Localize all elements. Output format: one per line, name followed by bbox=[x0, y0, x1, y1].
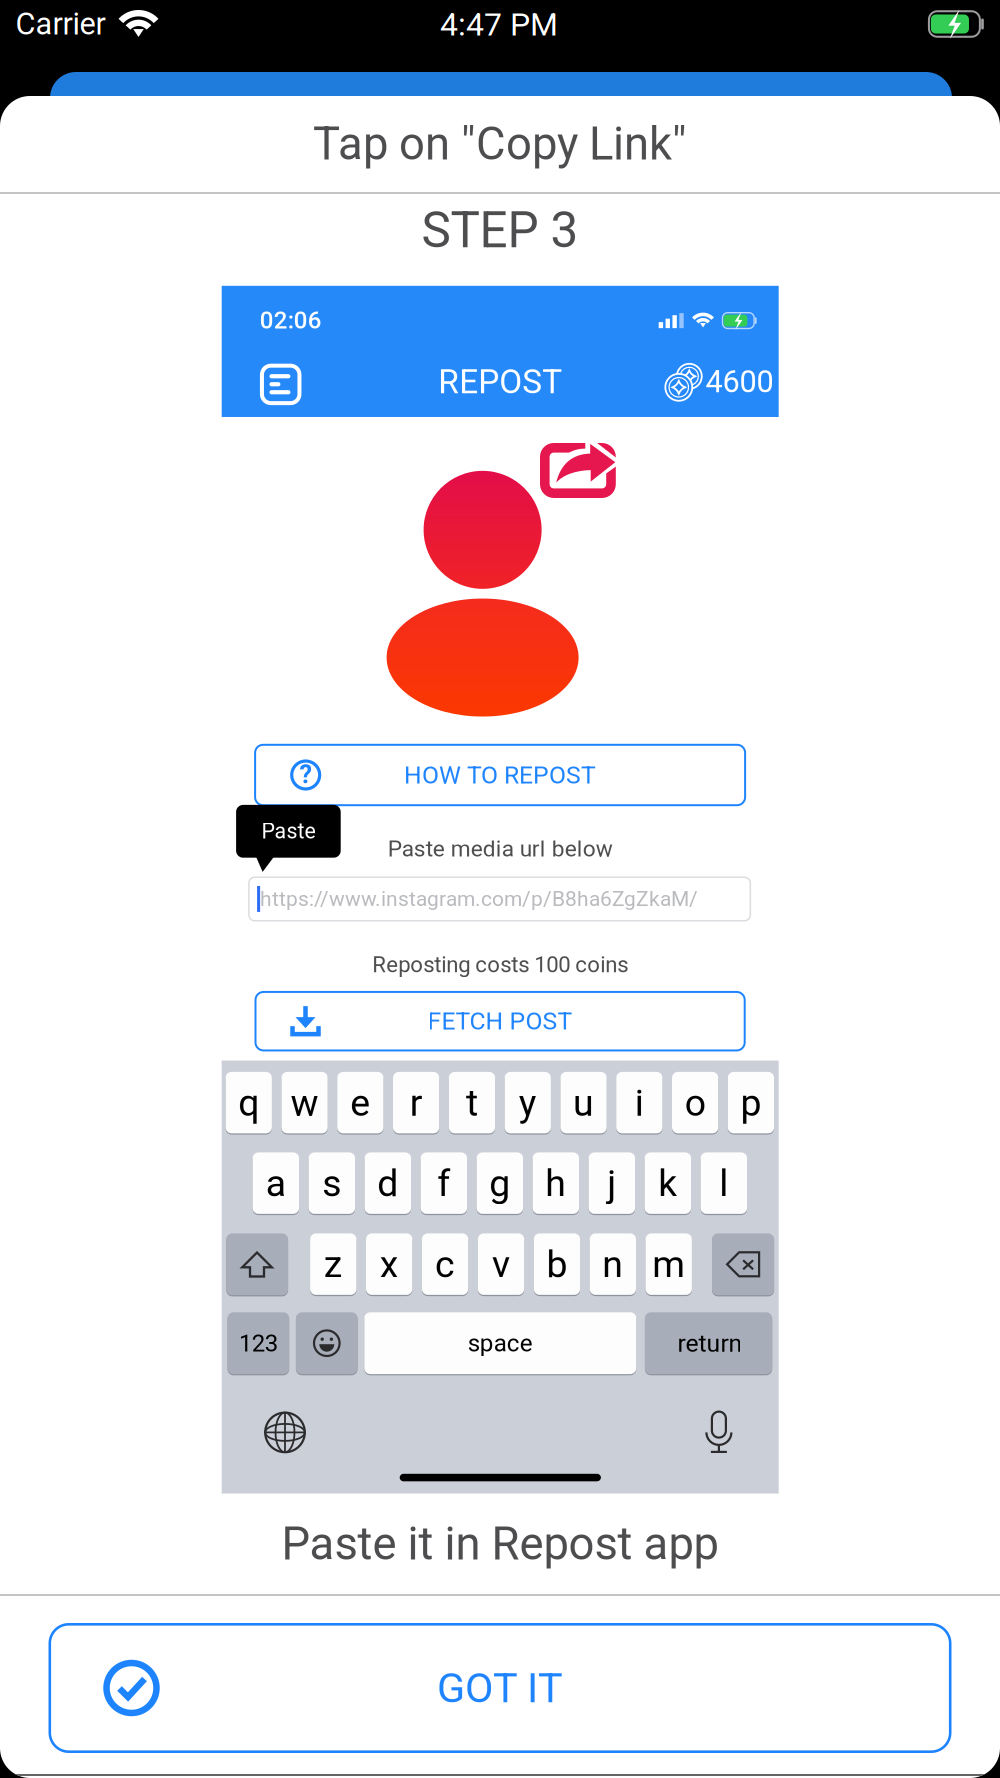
staticText: REPOST bbox=[438, 362, 562, 401]
staticText: HOW TO REPOST bbox=[404, 760, 596, 789]
staticText: space bbox=[468, 1329, 533, 1357]
staticText: y bbox=[519, 1081, 537, 1125]
staticText: 4600 bbox=[705, 364, 773, 400]
button[interactable]: ? bbox=[254, 744, 746, 806]
staticText: b bbox=[546, 1242, 567, 1286]
staticText: r bbox=[410, 1081, 423, 1125]
staticText: n bbox=[602, 1242, 623, 1286]
staticText: Reposting costs 100 coins bbox=[372, 952, 628, 978]
staticText: Carrier bbox=[15, 6, 105, 42]
staticText: z bbox=[324, 1242, 343, 1286]
button[interactable]: FETCH POST bbox=[254, 991, 746, 1051]
staticText: l bbox=[719, 1161, 728, 1205]
staticText: https://www.instagram.com/p/B8ha6ZgZkaM/ bbox=[260, 887, 698, 911]
staticText: u bbox=[573, 1081, 594, 1125]
button[interactable]: GOT IT bbox=[48, 1623, 951, 1753]
staticText: Paste bbox=[261, 819, 315, 844]
staticText: ? bbox=[299, 760, 312, 789]
staticText: 4:47 PM bbox=[440, 6, 558, 43]
staticText: h bbox=[545, 1161, 566, 1205]
staticText: j bbox=[607, 1161, 616, 1205]
staticText: g bbox=[489, 1161, 510, 1205]
staticText: e bbox=[350, 1081, 370, 1125]
staticText: s bbox=[322, 1161, 341, 1205]
staticText: STEP 3 bbox=[421, 202, 578, 259]
staticText: 123 bbox=[239, 1329, 278, 1357]
staticText: k bbox=[658, 1161, 677, 1205]
staticText: d bbox=[377, 1161, 398, 1205]
staticText: GOT IT bbox=[437, 1664, 563, 1712]
staticText: Paste media url below bbox=[388, 835, 613, 862]
staticText: q bbox=[238, 1081, 259, 1125]
staticText: Tap on "Copy Link" bbox=[313, 117, 687, 170]
staticText: c bbox=[435, 1242, 455, 1286]
staticText: m bbox=[652, 1242, 685, 1286]
staticText: x bbox=[380, 1242, 399, 1286]
staticText: f bbox=[437, 1161, 450, 1205]
staticText: Paste it in Repost app bbox=[281, 1517, 718, 1570]
staticText: FETCH POST bbox=[428, 1007, 573, 1036]
staticText: o bbox=[685, 1081, 706, 1125]
staticText: 02:06 bbox=[260, 306, 322, 334]
staticText: a bbox=[266, 1161, 286, 1205]
staticText: return bbox=[677, 1329, 742, 1358]
staticText: p bbox=[740, 1081, 761, 1125]
staticText: i bbox=[635, 1081, 644, 1125]
staticText: t bbox=[466, 1081, 478, 1125]
staticText: v bbox=[492, 1242, 510, 1286]
staticText: w bbox=[290, 1081, 318, 1125]
